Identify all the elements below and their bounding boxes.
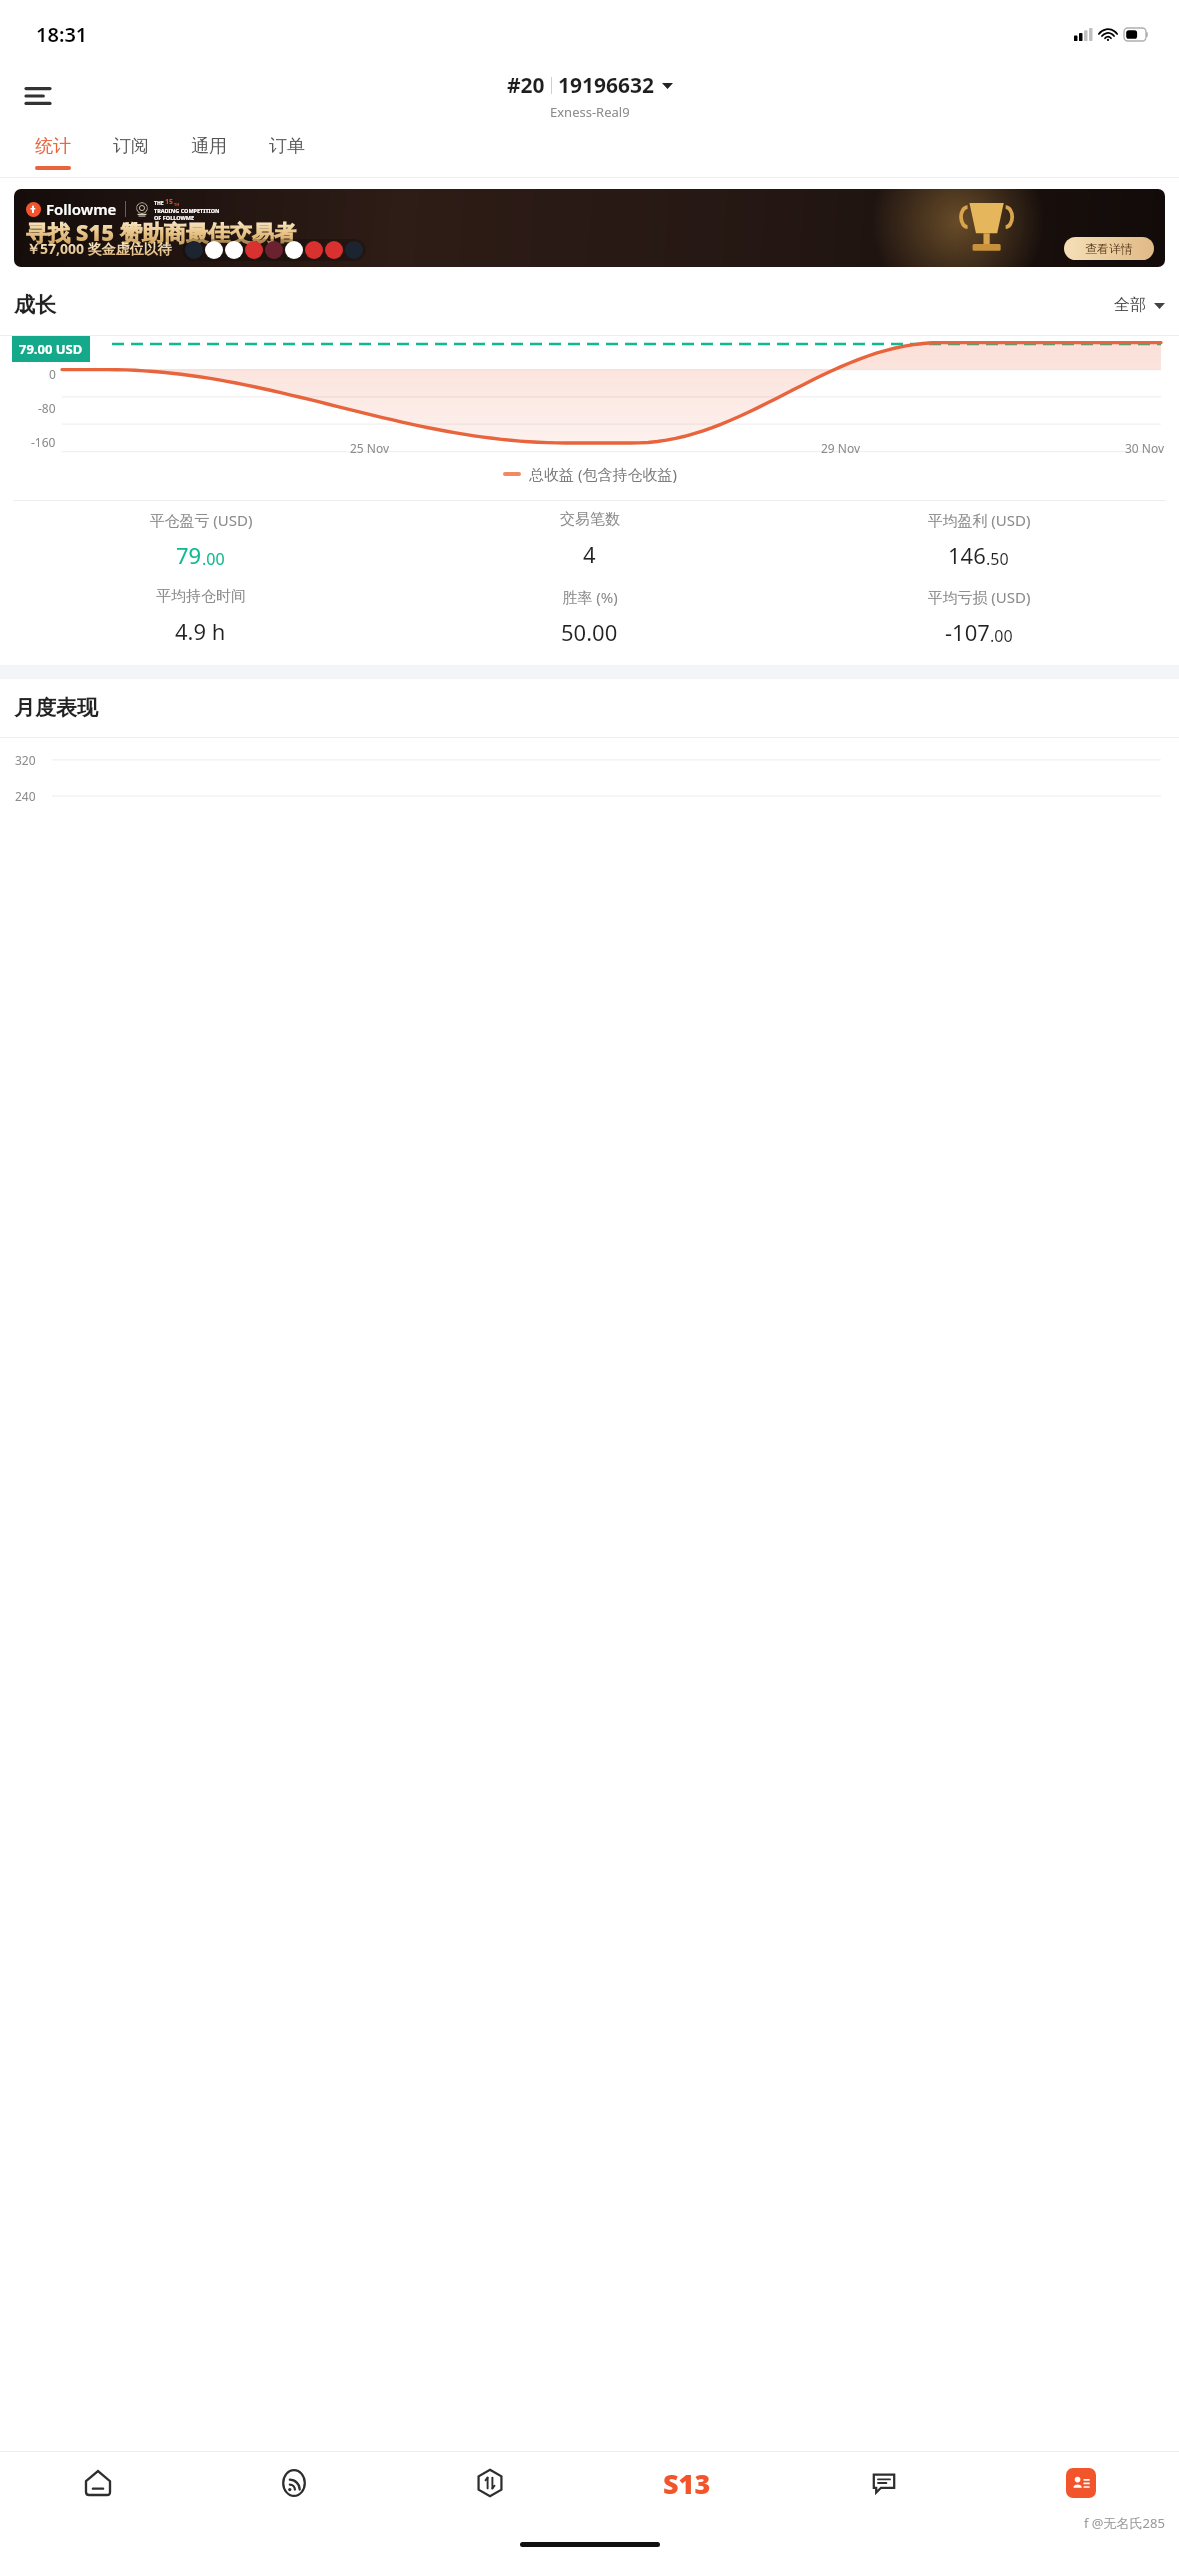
- staticText: 平均持仓时间: [156, 587, 246, 606]
- staticText: 79: [176, 540, 202, 570]
- staticText: TRADING COMPETITION: [154, 207, 220, 214]
- staticText: f @无名氏285: [1084, 2514, 1165, 2532]
- button[interactable]: S13: [588, 2452, 785, 2514]
- staticText: .00: [202, 548, 225, 570]
- staticText: 胜率 (%): [562, 587, 618, 607]
- staticText: 成长: [14, 292, 56, 318]
- button[interactable]: 统计: [14, 130, 92, 177]
- button[interactable]: Home: [0, 2452, 196, 2514]
- staticText: 总收益 (包含持仓收益): [529, 464, 677, 484]
- button[interactable]: Trade: [392, 2452, 588, 2514]
- staticText: .50: [986, 548, 1009, 570]
- staticText: 交易笔数: [560, 510, 620, 529]
- button[interactable]: #20: [507, 71, 673, 121]
- staticText: -80: [38, 400, 56, 416]
- staticText: 平仓盈亏 (USD): [149, 510, 253, 530]
- staticText: 19196632: [558, 71, 655, 100]
- staticText: 查看详情: [1085, 241, 1133, 256]
- staticText: 平均盈利 (USD): [927, 510, 1031, 530]
- staticText: 15: [165, 197, 174, 207]
- staticText: 4.9 h: [175, 616, 226, 646]
- staticText: 240: [15, 788, 36, 804]
- button[interactable]: 全部: [1114, 295, 1165, 315]
- staticText: OF FOLLOWME: [154, 214, 195, 221]
- button[interactable]: 通用: [170, 130, 248, 177]
- button[interactable]: Menu: [14, 72, 62, 120]
- staticText: 18:31: [36, 21, 88, 48]
- staticText: 25 Nov: [350, 440, 390, 456]
- staticText: 通用: [191, 135, 227, 158]
- staticText: 全部: [1114, 295, 1146, 315]
- button[interactable]: Messages: [785, 2452, 982, 2514]
- staticText: Exness-Real9: [550, 103, 630, 121]
- staticText: 50.00: [561, 617, 618, 647]
- staticText: 平均亏损 (USD): [927, 587, 1031, 607]
- staticText: 月度表现: [14, 695, 98, 721]
- staticText: .00: [990, 625, 1013, 647]
- staticText: 寻找 S15 赞助商最佳交易者: [26, 217, 296, 247]
- staticText: 320: [15, 752, 36, 768]
- staticText: Followme: [46, 199, 117, 219]
- staticText: -160: [31, 434, 56, 450]
- staticText: 订阅: [113, 135, 149, 158]
- button[interactable]: Profile: [982, 2452, 1179, 2514]
- staticText: #20: [507, 71, 545, 100]
- button[interactable]: Followme: [14, 189, 1165, 267]
- staticText: 4: [583, 539, 596, 569]
- staticText: THE: [154, 200, 165, 207]
- staticText: ￥57,000 奖金虚位以待: [26, 239, 172, 258]
- button[interactable]: 订阅: [92, 130, 170, 177]
- staticText: 0: [49, 366, 56, 382]
- staticText: 30 Nov: [1125, 440, 1165, 456]
- staticText: TH: [174, 202, 180, 207]
- button[interactable]: 订单: [248, 130, 326, 177]
- staticText: 79.00 USD: [19, 340, 83, 358]
- staticText: 29 Nov: [821, 440, 861, 456]
- staticText: 统计: [35, 135, 71, 158]
- staticText: S13: [663, 2465, 711, 2502]
- staticText: 146: [948, 540, 986, 570]
- button[interactable]: 查看详情: [1064, 237, 1154, 260]
- staticText: 订单: [269, 135, 305, 158]
- button[interactable]: Feed: [196, 2452, 392, 2514]
- staticText: -107: [945, 617, 990, 647]
